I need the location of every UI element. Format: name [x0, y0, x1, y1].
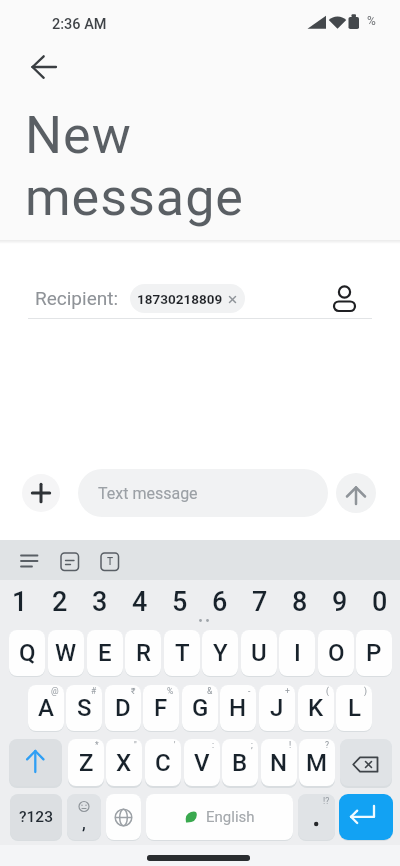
staticText: T — [107, 556, 114, 568]
staticText: N — [270, 749, 288, 777]
button[interactable]: L — [336, 685, 372, 731]
button[interactable]: Y — [202, 630, 238, 676]
button[interactable]: G — [182, 685, 218, 731]
staticText: T — [175, 639, 190, 667]
button[interactable]: 9 — [320, 584, 360, 620]
button[interactable]: 8 — [280, 584, 320, 620]
button[interactable]: A — [28, 685, 64, 731]
button[interactable]: D — [105, 685, 141, 731]
button[interactable] — [16, 550, 40, 574]
button[interactable]: English — [146, 794, 293, 840]
staticText: B — [232, 749, 248, 777]
button[interactable]: !? — [298, 794, 335, 840]
staticText: Z — [79, 749, 94, 777]
button[interactable]: O — [318, 630, 354, 676]
button[interactable] — [331, 283, 359, 311]
staticText: ' — [174, 740, 176, 750]
button[interactable]: N — [261, 739, 297, 786]
staticText: 2 — [52, 586, 68, 618]
button[interactable]: R — [125, 630, 161, 676]
button[interactable]: I — [279, 630, 315, 676]
button[interactable]: 18730218809 — [130, 284, 245, 313]
button[interactable]: P — [356, 630, 392, 676]
button[interactable]: , — [67, 794, 101, 840]
button[interactable]: 2 — [40, 584, 80, 620]
button[interactable]: T — [164, 630, 200, 676]
button[interactable]: W — [48, 630, 84, 676]
button[interactable]: T — [98, 550, 122, 574]
button[interactable]: 0 — [360, 584, 400, 620]
button[interactable] — [58, 550, 82, 574]
staticText: 5 — [172, 586, 188, 618]
button[interactable]: 4 — [120, 584, 160, 620]
staticText: A — [38, 694, 54, 722]
button[interactable]: 1 — [0, 584, 40, 620]
button[interactable]: M — [299, 739, 335, 786]
staticText: J — [270, 694, 284, 722]
button[interactable]: ?123 — [10, 794, 62, 840]
staticText: * — [95, 740, 99, 750]
button[interactable] — [22, 474, 60, 512]
button[interactable]: Text message — [78, 469, 328, 517]
staticText: @ — [51, 686, 59, 696]
staticText: ; — [251, 740, 253, 750]
button[interactable]: C — [145, 739, 181, 786]
staticText: Y — [213, 639, 228, 667]
button[interactable] — [339, 794, 393, 840]
staticText: # — [91, 686, 97, 696]
staticText: 1 — [12, 586, 28, 618]
staticText: L — [348, 694, 361, 722]
staticText: " — [134, 740, 137, 750]
staticText: & — [207, 686, 213, 696]
button[interactable]: H — [220, 685, 256, 731]
staticText: - — [248, 686, 251, 696]
staticText: + — [285, 686, 290, 696]
staticText: 8 — [292, 586, 308, 618]
button[interactable]: 7 — [240, 584, 280, 620]
button[interactable] — [9, 739, 62, 786]
staticText: V — [194, 749, 210, 777]
staticText: M — [306, 749, 328, 777]
button[interactable]: B — [222, 739, 258, 786]
staticText: 4 — [132, 586, 148, 618]
staticText: !? — [323, 796, 330, 806]
staticText: ?123 — [19, 808, 53, 826]
button[interactable]: V — [184, 739, 220, 786]
staticText: 7 — [252, 586, 268, 618]
button[interactable] — [28, 51, 60, 83]
staticText: C — [155, 749, 171, 777]
button[interactable]: E — [87, 630, 123, 676]
staticText: H — [229, 694, 247, 722]
staticText: P — [366, 639, 382, 667]
button[interactable]: 5 — [160, 584, 200, 620]
button[interactable] — [336, 473, 376, 513]
staticText: % — [367, 14, 376, 28]
staticText: 9 — [332, 586, 348, 618]
staticText: ₹ — [131, 686, 136, 696]
staticText: ? — [325, 740, 330, 750]
button[interactable]: 3 — [80, 584, 120, 620]
button[interactable] — [106, 794, 141, 840]
staticText: U — [251, 639, 267, 667]
staticText: Recipient: — [35, 287, 119, 309]
button[interactable]: Q — [9, 630, 45, 676]
button[interactable]: J — [259, 685, 295, 731]
staticText: S — [77, 694, 92, 722]
button[interactable]: U — [241, 630, 277, 676]
button[interactable]: F — [143, 685, 179, 731]
staticText: E — [98, 639, 112, 667]
staticText: ! — [289, 740, 292, 750]
staticText: English — [206, 808, 255, 826]
staticText: : — [212, 740, 215, 750]
button[interactable]: 6 — [200, 584, 240, 620]
button[interactable]: X — [106, 739, 142, 786]
staticText: ) — [364, 686, 367, 696]
staticText: G — [192, 694, 209, 722]
button[interactable] — [340, 739, 392, 786]
button[interactable]: S — [66, 685, 102, 731]
staticText: R — [136, 639, 151, 667]
staticText: 18730218809 — [137, 291, 223, 307]
button[interactable]: Z — [68, 739, 104, 786]
button[interactable]: K — [298, 685, 334, 731]
staticText: , — [82, 813, 86, 833]
